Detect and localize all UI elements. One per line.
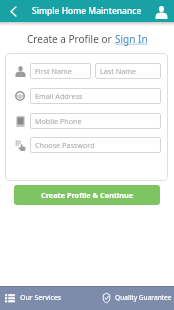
staticText: Create a Profile or xyxy=(27,32,115,46)
staticText: Email Address xyxy=(35,91,83,101)
button[interactable]: Last Name xyxy=(95,63,161,79)
button[interactable]: Email Address xyxy=(30,88,161,104)
button[interactable]: Account xyxy=(151,1,171,21)
button[interactable]: First Name xyxy=(30,63,91,79)
button[interactable]: Our Services xyxy=(0,286,87,310)
staticText: Quality Guarantee xyxy=(115,293,172,302)
button[interactable]: Create Profile & Continue xyxy=(14,185,160,205)
staticText: First Name xyxy=(35,66,72,76)
staticText: Choose Password xyxy=(35,140,95,150)
staticText: Simple Home Maintenance xyxy=(32,5,142,17)
staticText: Last Name xyxy=(100,66,136,76)
button[interactable]: Choose Password xyxy=(30,137,161,153)
staticText: Mobile Phone xyxy=(35,116,82,126)
button[interactable]: Back xyxy=(5,3,21,19)
button[interactable]: Quality Guarantee xyxy=(87,286,174,310)
button[interactable]: Sign In xyxy=(115,32,148,46)
button[interactable]: Mobile Phone xyxy=(30,113,161,129)
staticText: Our Services xyxy=(20,293,62,303)
staticText: Create Profile & Continue xyxy=(41,190,134,200)
